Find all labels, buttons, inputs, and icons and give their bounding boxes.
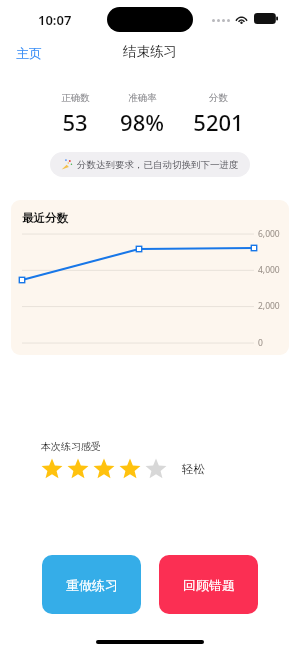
staticText: 6,000 <box>258 228 280 240</box>
staticText: 轻松 <box>182 462 205 476</box>
button[interactable]: 主页 <box>10 42 48 64</box>
staticText: 10:07 <box>38 11 72 29</box>
button[interactable]: 4 out of 5 stars <box>39 456 205 482</box>
button[interactable]: 重做练习 <box>42 555 141 614</box>
staticText: 主页 <box>16 45 42 61</box>
staticText: 最近分数 <box>22 211 68 225</box>
staticText: 准确率 <box>128 92 157 104</box>
staticText: 正确数 <box>61 92 90 104</box>
staticText: 分数 <box>209 92 228 104</box>
staticText: 2,000 <box>258 300 280 312</box>
staticText: 5201 <box>193 107 244 137</box>
staticText: 结束练习 <box>123 43 177 60</box>
staticText: 98% <box>120 107 164 137</box>
button[interactable]: 回顾错题 <box>159 555 258 614</box>
button[interactable]: 分数达到要求，已自动切换到下一进度 <box>50 152 250 177</box>
staticText: 重做练习 <box>66 577 118 593</box>
button[interactable]: 最近分数 <box>11 200 289 355</box>
staticText: 53 <box>62 107 88 137</box>
staticText: 0 <box>258 337 263 349</box>
staticText: 回顾错题 <box>183 577 235 593</box>
staticText: 4,000 <box>258 264 280 276</box>
staticText: 分数达到要求，已自动切换到下一进度 <box>77 159 239 171</box>
staticText: 本次练习感受 <box>41 440 101 453</box>
